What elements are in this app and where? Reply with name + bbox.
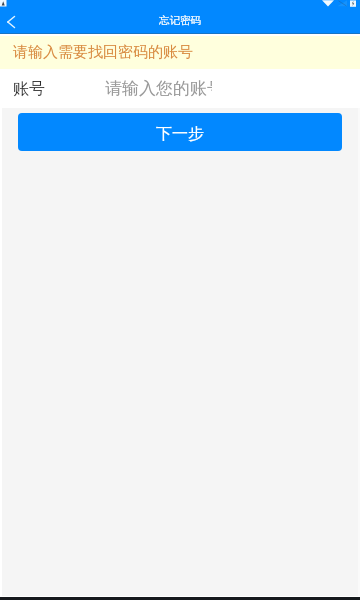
staticText: 下一步 xyxy=(156,124,204,144)
button[interactable]: Back xyxy=(0,10,22,32)
button[interactable]: 下一步 xyxy=(18,113,342,151)
staticText: 账号 xyxy=(13,79,45,99)
button[interactable]: 账号 xyxy=(0,69,360,108)
staticText: 请输入您的账号 xyxy=(105,78,212,99)
staticText: 忘记密码 xyxy=(159,14,201,27)
staticText: 请输入需要找回密码的账号 xyxy=(13,43,193,62)
